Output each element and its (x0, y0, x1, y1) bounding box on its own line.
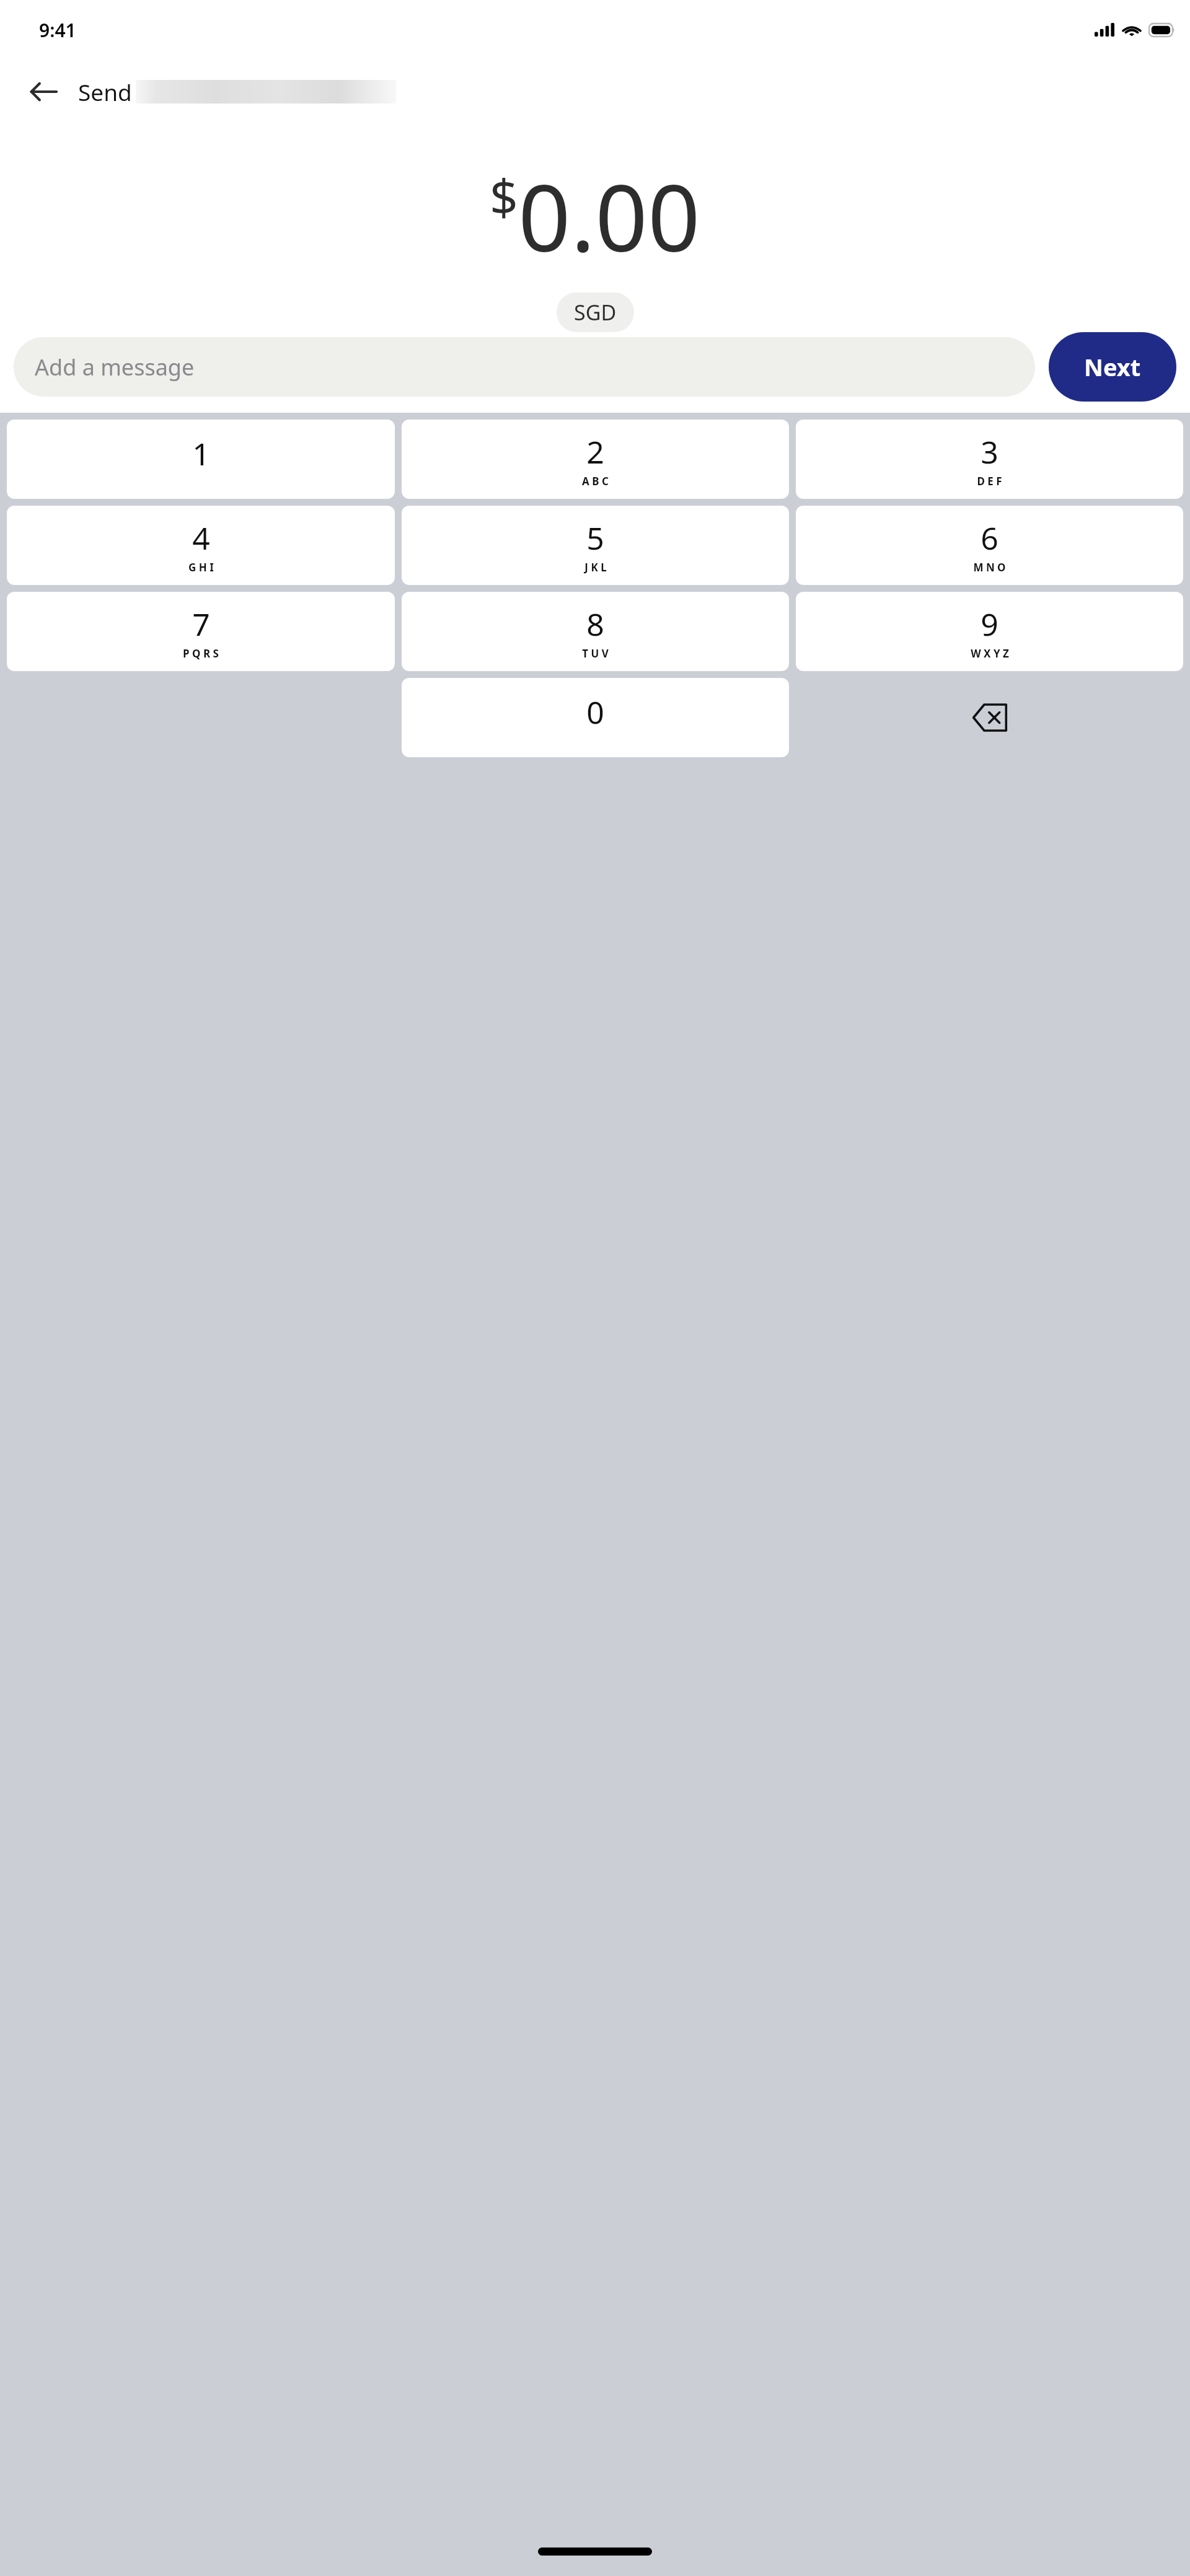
button[interactable]: 7 (7, 592, 395, 671)
button[interactable]: Backspace (796, 678, 1183, 757)
staticText: Next (1084, 351, 1141, 383)
staticText: P Q R S (183, 646, 219, 661)
staticText: Send (78, 76, 132, 107)
staticText: 4 (192, 517, 210, 559)
staticText: 2 (586, 431, 604, 473)
staticText: 7 (192, 603, 210, 645)
staticText: 5 (586, 517, 604, 559)
button[interactable]: 9 (796, 592, 1183, 671)
staticText: M N O (973, 560, 1006, 574)
staticText: $ (490, 162, 518, 230)
button[interactable]: 6 (796, 506, 1183, 585)
staticText: 6 (981, 517, 998, 559)
staticText: A B C (582, 474, 609, 488)
staticText: Add a message (35, 352, 195, 382)
button[interactable]: Back (14, 62, 73, 121)
staticText: 9:41 (39, 17, 76, 43)
button[interactable]: 3 (796, 420, 1183, 499)
button[interactable]: 8 (402, 592, 789, 671)
staticText: SGD (574, 298, 617, 327)
button[interactable]: 0 (402, 678, 789, 757)
button[interactable]: 1 (7, 420, 395, 499)
button[interactable]: 4 (7, 506, 395, 585)
staticText: 0.00 (518, 154, 700, 279)
staticText: W X Y Z (971, 646, 1009, 661)
staticText: 8 (586, 603, 604, 645)
button[interactable]: Add a message (14, 337, 1035, 397)
staticText: 0 (586, 691, 604, 733)
staticText: 9 (981, 603, 998, 645)
staticText: J K L (584, 560, 607, 574)
button[interactable]: SGD (557, 292, 634, 332)
button[interactable]: 2 (402, 420, 789, 499)
staticText: D E F (977, 474, 1002, 488)
button[interactable]: Next (1049, 332, 1176, 402)
staticText: 3 (981, 431, 998, 473)
staticText: 1 (192, 433, 210, 475)
staticText: T U V (582, 646, 609, 661)
staticText: G H I (188, 560, 214, 574)
button[interactable]: 5 (402, 506, 789, 585)
